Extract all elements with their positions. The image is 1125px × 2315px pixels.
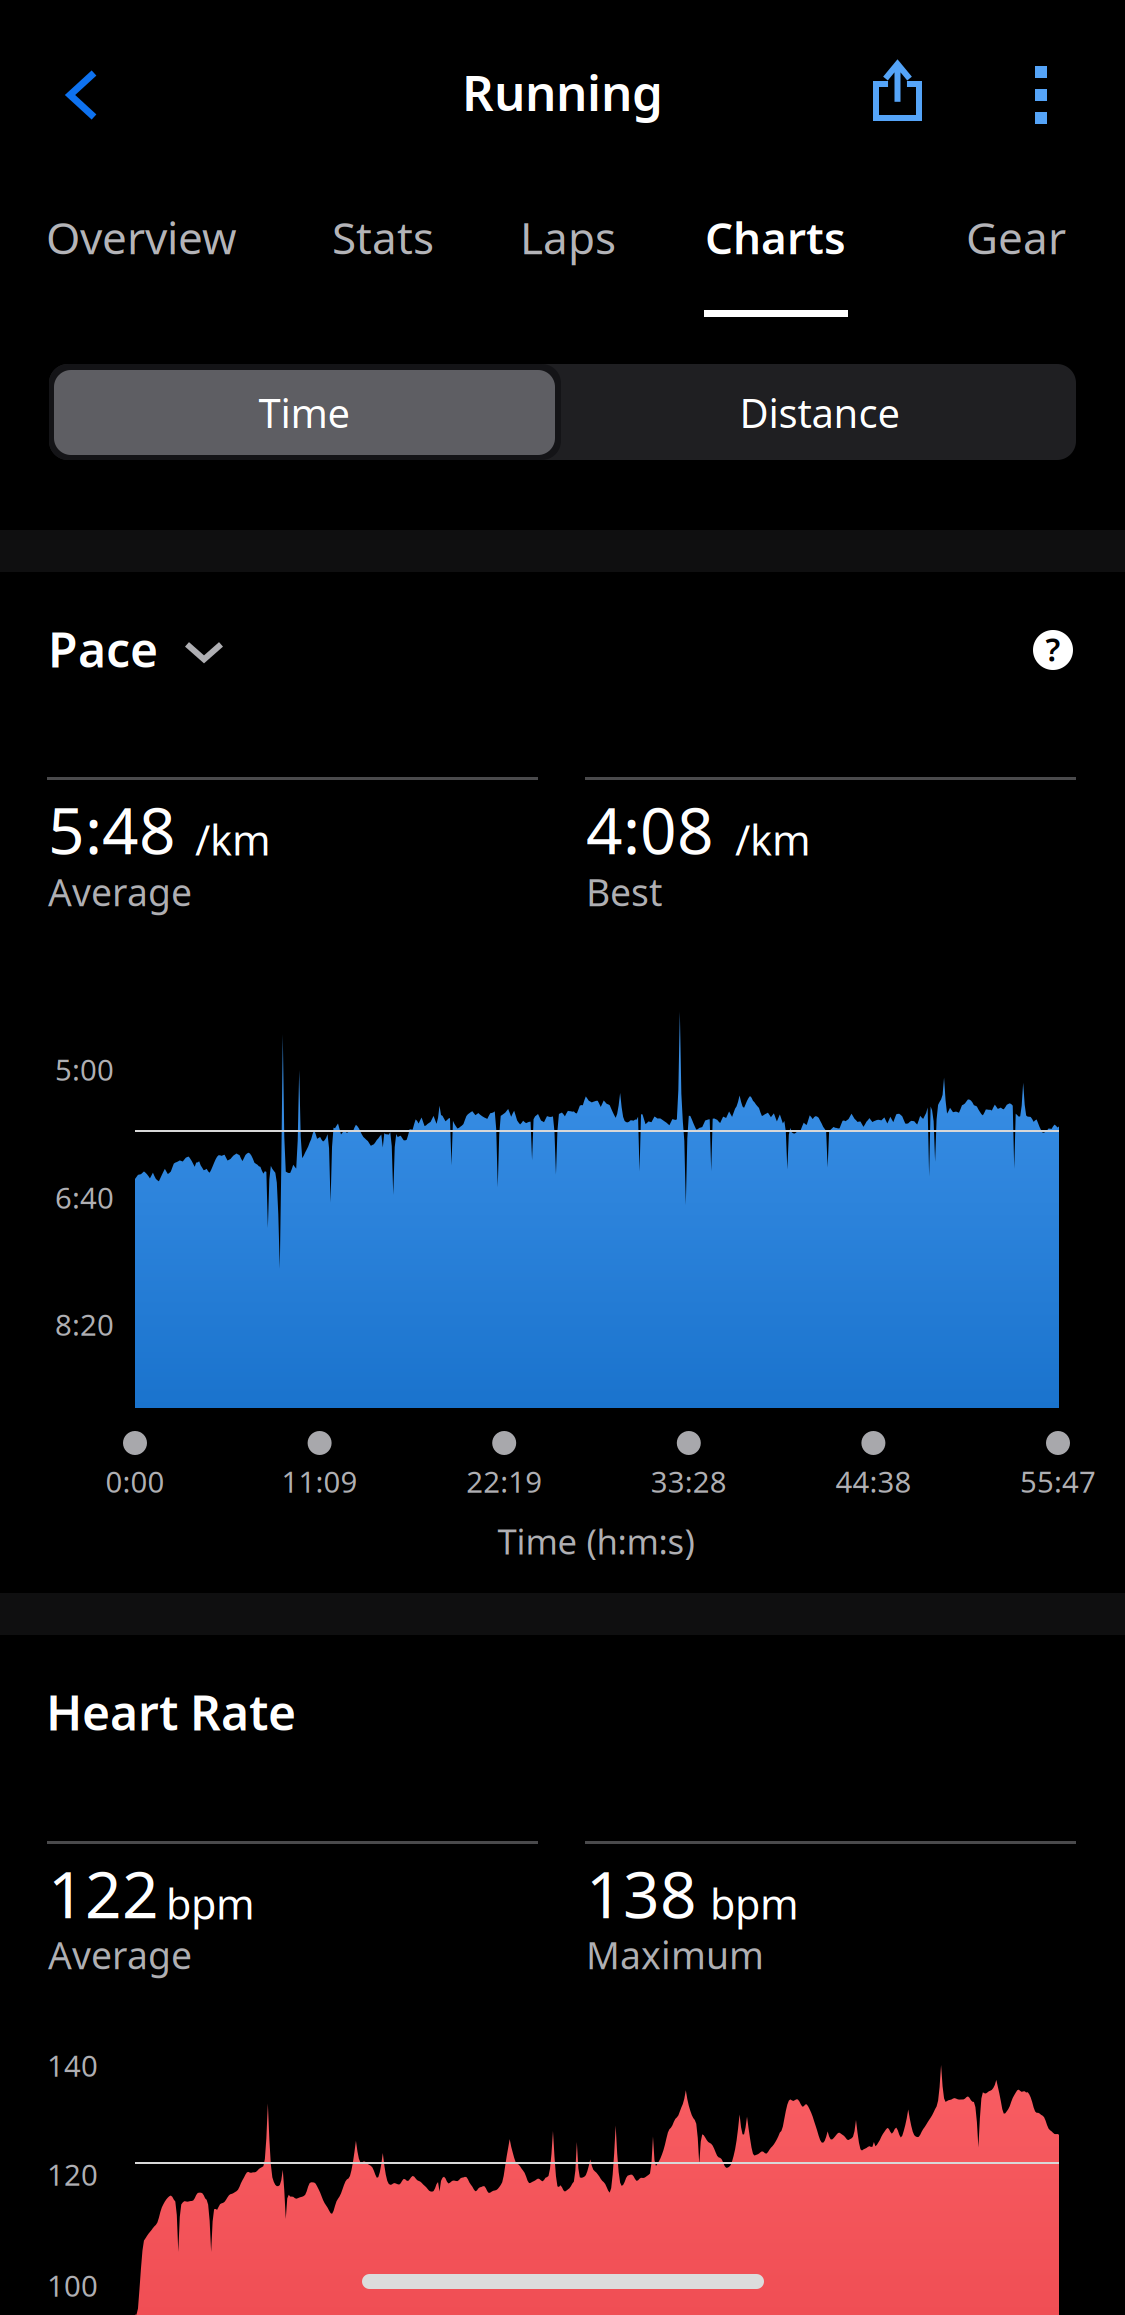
staticText: Stats: [332, 208, 434, 266]
button[interactable]: Laps: [498, 182, 638, 292]
staticText: /km: [735, 812, 811, 867]
staticText: bpm: [710, 1876, 799, 1931]
button[interactable]: Stats: [310, 182, 456, 292]
button[interactable]: More options: [996, 40, 1086, 150]
staticText: Pace: [48, 617, 158, 681]
staticText: 122: [48, 1851, 159, 1936]
staticText: 120: [47, 2155, 98, 2194]
staticText: 33:28: [651, 1462, 727, 1501]
staticText: Overview: [46, 208, 237, 266]
staticText: 55:47: [1020, 1462, 1096, 1501]
staticText: Charts: [705, 208, 846, 266]
staticText: 4:08: [586, 787, 714, 872]
staticText: Average: [48, 867, 192, 917]
button[interactable]: Pace: [48, 592, 245, 706]
staticText: Laps: [520, 208, 616, 266]
button[interactable]: Share: [849, 36, 946, 146]
staticText: 100: [47, 2266, 98, 2305]
button[interactable]: Overview: [24, 182, 259, 292]
staticText: ?: [1045, 628, 1060, 670]
button[interactable]: Time: [54, 370, 555, 455]
staticText: Average: [48, 1930, 192, 1980]
staticText: /km: [195, 812, 271, 867]
staticText: Gear: [966, 208, 1066, 266]
staticText: 140: [47, 2046, 98, 2085]
button[interactable]: Help: [1019, 616, 1087, 684]
staticText: 0:00: [105, 1462, 164, 1501]
staticText: 5:48: [48, 787, 176, 872]
staticText: Time (h:m:s): [497, 1518, 694, 1564]
staticText: Heart Rate: [46, 1680, 296, 1744]
staticText: Running: [462, 59, 663, 124]
staticText: Time: [258, 386, 350, 439]
button[interactable]: Back: [25, 35, 139, 155]
staticText: bpm: [166, 1876, 255, 1931]
button[interactable]: Charts: [683, 182, 868, 292]
staticText: Maximum: [586, 1930, 764, 1980]
staticText: 8:20: [55, 1305, 114, 1344]
staticText: 138: [586, 1851, 697, 1936]
staticText: 44:38: [835, 1462, 911, 1501]
staticText: Distance: [739, 386, 900, 439]
button[interactable]: Gear: [944, 182, 1088, 292]
button[interactable]: Distance: [570, 370, 1070, 455]
staticText: Best: [586, 867, 662, 917]
staticText: 5:00: [55, 1050, 114, 1089]
staticText: 22:19: [466, 1462, 542, 1501]
staticText: 11:09: [282, 1462, 358, 1501]
staticText: 6:40: [55, 1178, 114, 1217]
